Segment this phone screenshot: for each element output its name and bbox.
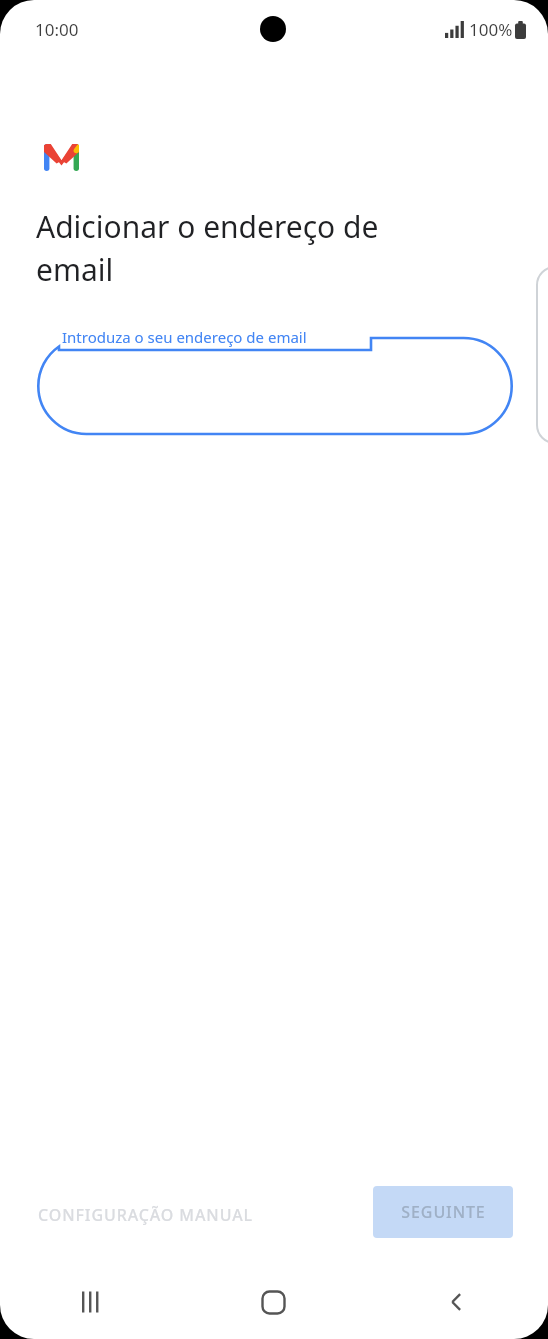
staticText: 100%: [469, 18, 513, 41]
button[interactable]: Introduza o seu endereço de email: [37, 322, 513, 436]
staticText: Adicionar o endereço de email: [36, 206, 456, 290]
button[interactable]: Back: [365, 1265, 548, 1339]
staticText: 10:00: [35, 18, 79, 41]
button[interactable]: SEGUINTE: [373, 1186, 513, 1238]
button[interactable]: CONFIGURAÇÃO MANUAL: [22, 1192, 270, 1238]
button[interactable]: Recent apps: [0, 1265, 182, 1339]
button[interactable]: Home: [182, 1265, 365, 1339]
staticText: Introduza o seu endereço de email: [62, 327, 307, 347]
staticText: SEGUINTE: [401, 1201, 486, 1223]
staticText: CONFIGURAÇÃO MANUAL: [38, 1204, 254, 1226]
